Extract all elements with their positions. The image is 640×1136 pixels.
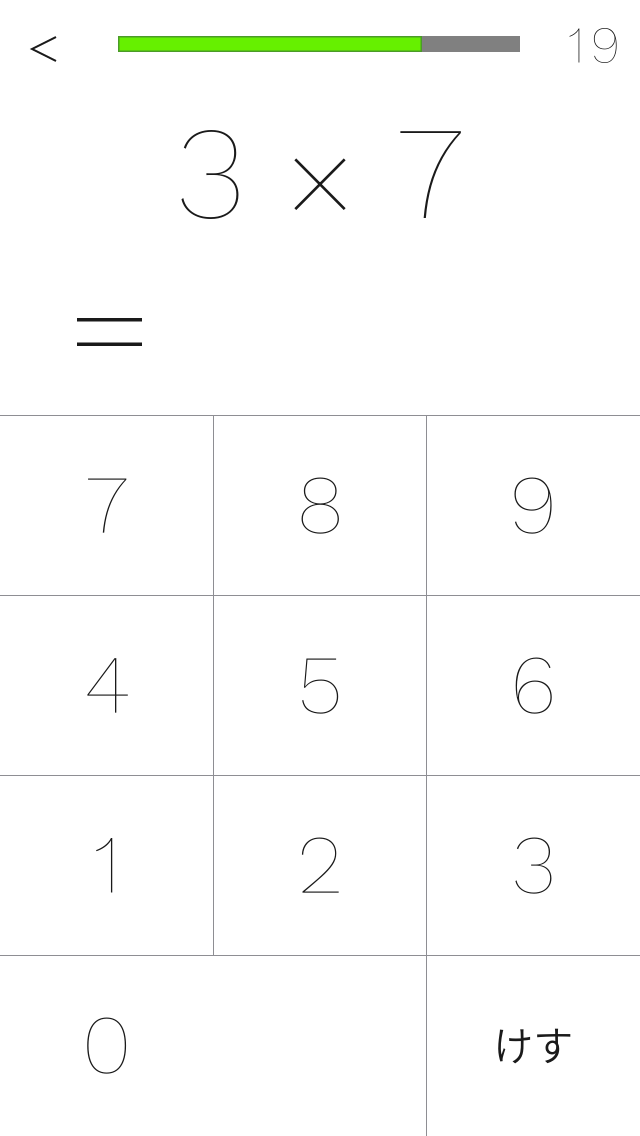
staticText: 3	[176, 96, 243, 250]
button[interactable]: けす	[427, 955, 640, 1135]
staticText: 7	[397, 96, 462, 250]
staticText: 1	[94, 815, 120, 912]
staticText: 4	[84, 635, 129, 732]
button[interactable]: 2	[213, 775, 427, 955]
staticText: 9	[510, 455, 557, 552]
button[interactable]: 5	[213, 595, 427, 775]
staticText: 19	[568, 15, 620, 75]
staticText: けす	[493, 1014, 573, 1072]
button[interactable]: Back	[6, 12, 78, 84]
staticText: 0	[82, 995, 131, 1092]
staticText: 6	[511, 635, 556, 732]
staticText: 8	[297, 455, 343, 552]
button[interactable]: 8	[213, 415, 427, 595]
button[interactable]: 3	[427, 775, 640, 955]
staticText: 7	[86, 455, 127, 552]
button[interactable]: 0	[0, 955, 427, 1135]
staticText: ×	[276, 95, 363, 264]
button[interactable]: 9	[427, 415, 640, 595]
button[interactable]: 1	[0, 775, 213, 955]
staticText: 3	[512, 815, 554, 912]
button[interactable]: 6	[427, 595, 640, 775]
staticText: 2	[298, 815, 342, 912]
button[interactable]: 4	[0, 595, 213, 775]
button[interactable]: 7	[0, 415, 213, 595]
staticText: 5	[298, 635, 342, 732]
